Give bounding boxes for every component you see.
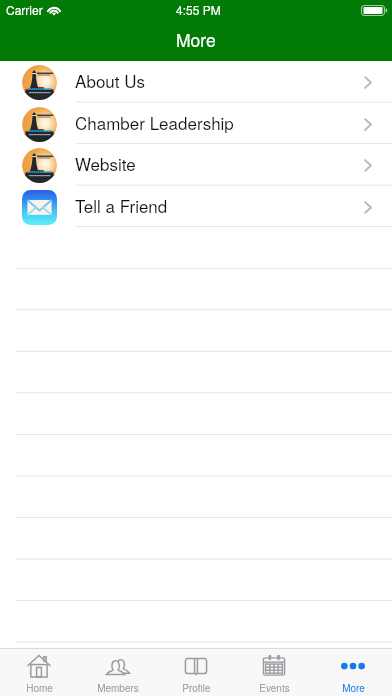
- button[interactable]: Tell a Friend: [0, 186, 392, 228]
- staticText: Profile: [182, 681, 211, 695]
- staticText: Chamber Leadership: [75, 110, 234, 134]
- staticText: More: [342, 681, 365, 695]
- staticText: Tell a Friend: [75, 193, 168, 217]
- staticText: 4:55 PM: [176, 1, 221, 18]
- button[interactable]: Events: [235, 648, 313, 696]
- button[interactable]: Chamber Leadership: [0, 103, 392, 145]
- staticText: Carrier: [6, 1, 43, 18]
- staticText: Website: [75, 151, 136, 175]
- staticText: Members: [97, 681, 139, 695]
- staticText: Home: [26, 681, 53, 695]
- button[interactable]: Profile: [157, 648, 235, 696]
- button[interactable]: More: [314, 648, 392, 696]
- staticText: About Us: [75, 68, 146, 92]
- button[interactable]: About Us: [0, 61, 392, 103]
- button[interactable]: Website: [0, 144, 392, 186]
- button[interactable]: Home: [0, 648, 78, 696]
- button[interactable]: Members: [79, 648, 157, 696]
- staticText: Events: [259, 681, 290, 695]
- staticText: More: [176, 27, 216, 52]
